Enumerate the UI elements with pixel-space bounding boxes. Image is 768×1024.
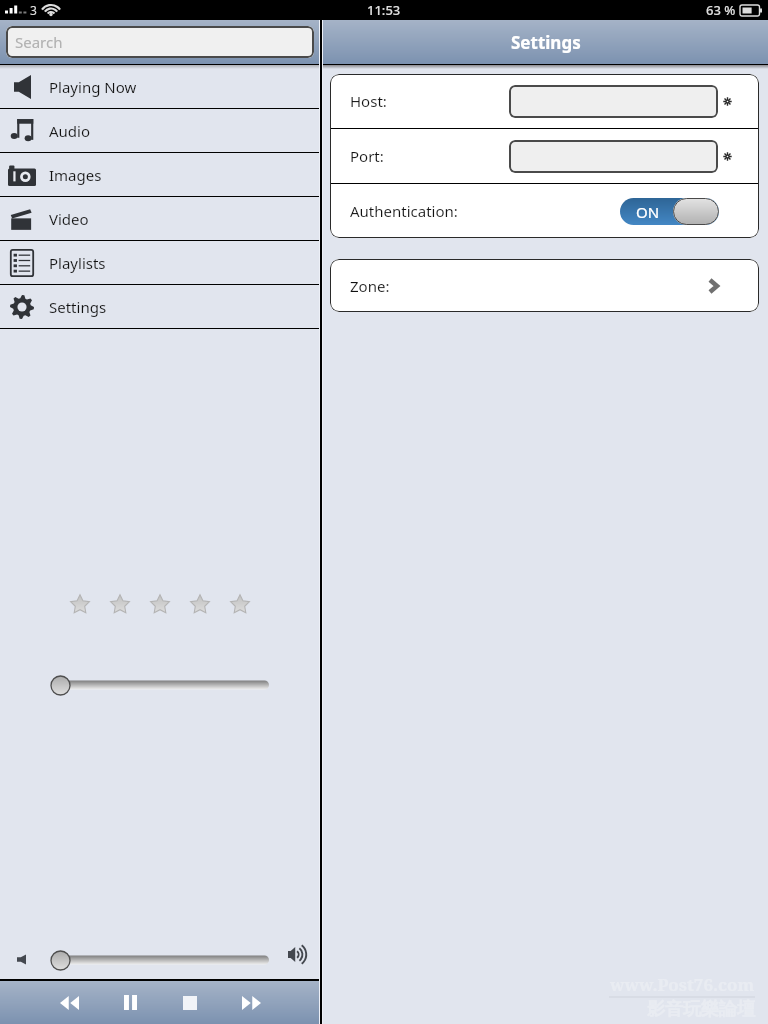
staticText: Authentication: bbox=[350, 201, 458, 221]
staticText: Settings bbox=[49, 297, 107, 317]
staticText: Zone: bbox=[350, 276, 390, 296]
button[interactable] bbox=[100, 592, 140, 618]
button[interactable] bbox=[220, 592, 260, 618]
button[interactable]: Audio bbox=[0, 109, 319, 152]
staticText: 11:53 bbox=[367, 1, 401, 19]
staticText: Search bbox=[15, 32, 63, 52]
staticText: 3 bbox=[30, 2, 37, 18]
button[interactable]: Video bbox=[0, 197, 319, 240]
button[interactable]: Settings bbox=[0, 285, 319, 328]
staticText: Playing Now bbox=[49, 77, 137, 97]
button[interactable]: Search bbox=[6, 26, 314, 58]
button[interactable]: Zone: bbox=[330, 259, 759, 312]
button[interactable] bbox=[180, 592, 220, 618]
button[interactable] bbox=[509, 85, 718, 118]
staticText: Images bbox=[49, 165, 102, 185]
button[interactable] bbox=[140, 592, 180, 618]
button[interactable]: Playing Now bbox=[0, 65, 319, 108]
staticText: ON bbox=[636, 202, 660, 222]
button[interactable]: Playlists bbox=[0, 241, 319, 284]
staticText: Playlists bbox=[49, 253, 106, 273]
staticText: Audio bbox=[49, 121, 91, 141]
staticText: 63 % bbox=[706, 1, 736, 19]
button[interactable] bbox=[60, 592, 100, 618]
staticText: 影音玩樂論壇 bbox=[647, 998, 755, 1021]
button[interactable]: ON bbox=[620, 198, 719, 225]
button[interactable]: Next bbox=[227, 981, 275, 1024]
button[interactable]: Stop bbox=[166, 981, 214, 1024]
button[interactable]: Previous bbox=[45, 981, 93, 1024]
staticText: Port: bbox=[350, 146, 384, 166]
staticText: Video bbox=[49, 209, 89, 229]
button[interactable] bbox=[509, 140, 718, 173]
staticText: Host: bbox=[350, 91, 387, 111]
staticText: Settings bbox=[511, 31, 581, 54]
button[interactable]: Images bbox=[0, 153, 319, 196]
button[interactable]: Pause bbox=[106, 981, 154, 1024]
